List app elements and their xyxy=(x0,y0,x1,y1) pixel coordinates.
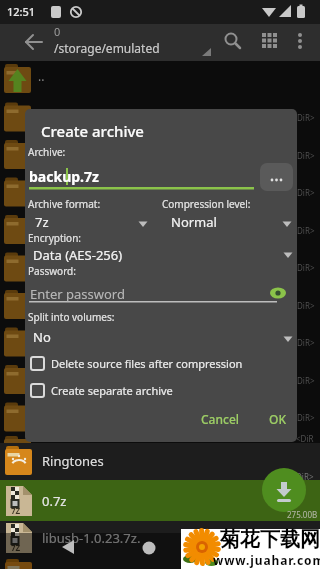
staticText: 7Z xyxy=(11,505,21,516)
button[interactable] xyxy=(165,205,293,227)
staticText: 7z xyxy=(35,213,49,231)
staticText: Archive format: xyxy=(28,197,101,211)
button[interactable] xyxy=(125,535,175,565)
staticText: www.juahar.com xyxy=(213,552,320,568)
staticText: Normal xyxy=(171,213,217,231)
staticText: 菊花下载网 xyxy=(220,527,320,552)
staticText: Create archive xyxy=(41,121,144,141)
staticText: DiR> xyxy=(297,337,315,348)
staticText: DiR> xyxy=(297,225,315,236)
staticText: Delete source files after compression xyxy=(51,356,243,371)
button[interactable] xyxy=(260,163,293,191)
button[interactable] xyxy=(29,353,269,373)
button[interactable] xyxy=(212,24,252,61)
staticText: /storage/emulated xyxy=(54,40,160,56)
staticText: Create separate archive xyxy=(51,383,173,398)
button[interactable] xyxy=(16,24,50,61)
staticText: 0.7z xyxy=(42,492,67,510)
staticText: Enter password xyxy=(30,285,125,303)
staticText: DiR> xyxy=(297,300,315,311)
button[interactable] xyxy=(286,24,320,61)
staticText: No xyxy=(33,328,51,346)
staticText: 12:51 xyxy=(7,4,36,19)
staticText: libusb-1.0.23.7z. xyxy=(42,529,141,547)
staticText: Archive: xyxy=(28,145,66,159)
staticText: Split into volumes: xyxy=(28,310,115,324)
button[interactable] xyxy=(40,535,90,565)
staticText: Cancel xyxy=(201,411,240,427)
staticText: Password: xyxy=(28,264,76,278)
staticText: Compression level: xyxy=(162,197,251,211)
button[interactable] xyxy=(0,480,320,521)
button[interactable] xyxy=(0,443,320,480)
button[interactable] xyxy=(252,24,286,61)
button[interactable] xyxy=(29,380,269,400)
button[interactable] xyxy=(29,277,293,303)
staticText: OK xyxy=(269,411,286,427)
button[interactable] xyxy=(29,321,293,343)
staticText: DiR> xyxy=(297,150,315,161)
staticText: DiR> xyxy=(297,187,315,198)
staticText: 0 xyxy=(54,24,61,39)
button[interactable]: Cancel xyxy=(191,404,241,430)
staticText: Data (AES-256) xyxy=(33,246,123,264)
button[interactable]: OK xyxy=(259,404,293,430)
staticText: DiR> xyxy=(297,412,315,423)
staticText: DiR> xyxy=(297,112,315,123)
staticText: .. xyxy=(38,68,45,84)
staticText: backup.7z xyxy=(29,167,99,186)
staticText: 7Z xyxy=(11,542,21,553)
staticText: DiR> xyxy=(297,262,315,273)
staticText: <DiR xyxy=(296,433,314,444)
staticText: Encryption: xyxy=(28,231,82,245)
staticText: DiR> xyxy=(296,471,314,482)
button[interactable] xyxy=(29,238,293,260)
staticText: 275.00B xyxy=(287,509,318,520)
button[interactable] xyxy=(29,205,149,227)
button[interactable] xyxy=(262,468,306,512)
staticText: Ringtones xyxy=(42,452,104,470)
staticText: DiR> xyxy=(297,375,315,386)
